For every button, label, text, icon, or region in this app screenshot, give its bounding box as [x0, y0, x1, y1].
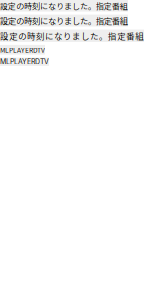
staticText: MLPLAYERDTV: [0, 45, 45, 55]
staticText: 設定の時刻になりました。指定番組: [0, 0, 128, 12]
staticText: MLPLAYERDTV: [0, 58, 49, 66]
staticText: 設定の時刻になりました。指定番組: [0, 15, 128, 27]
staticText: 設定の時刻になりました。指定番組: [0, 30, 144, 42]
